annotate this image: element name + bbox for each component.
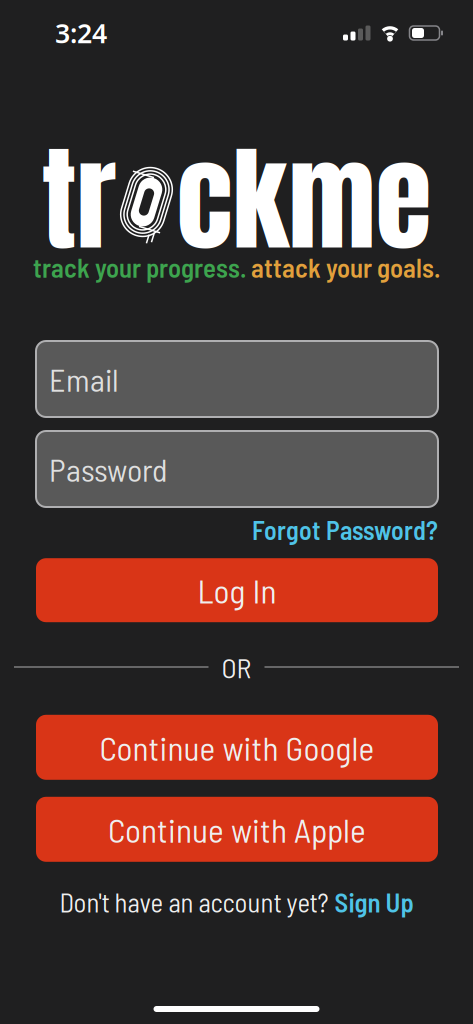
staticText: Don't have an account yet? bbox=[59, 886, 328, 918]
staticText: track your progress. bbox=[33, 251, 246, 283]
staticText: Forgot Password? bbox=[252, 514, 438, 545]
button[interactable]: Log In bbox=[0, 558, 473, 622]
staticText: Continue with Apple bbox=[108, 809, 366, 849]
button[interactable]: Forgot Password? bbox=[252, 514, 438, 545]
staticText: Email bbox=[49, 360, 119, 398]
staticText: Continue with Google bbox=[99, 727, 374, 767]
staticText: Sign Up bbox=[334, 886, 413, 918]
staticText: attack your goals. bbox=[251, 251, 440, 283]
button[interactable]: Email bbox=[0, 341, 473, 417]
button[interactable]: Password bbox=[0, 431, 473, 507]
staticText: tr bbox=[41, 113, 116, 285]
button[interactable]: Continue with Google bbox=[0, 715, 473, 780]
staticText: Password bbox=[49, 450, 167, 488]
staticText: Log In bbox=[197, 570, 276, 610]
staticText: 3:24 bbox=[55, 15, 107, 51]
button[interactable]: Sign Up bbox=[334, 886, 413, 918]
staticText: ckme bbox=[176, 113, 431, 285]
button[interactable]: Continue with Apple bbox=[0, 797, 473, 862]
staticText: OR bbox=[221, 650, 251, 684]
